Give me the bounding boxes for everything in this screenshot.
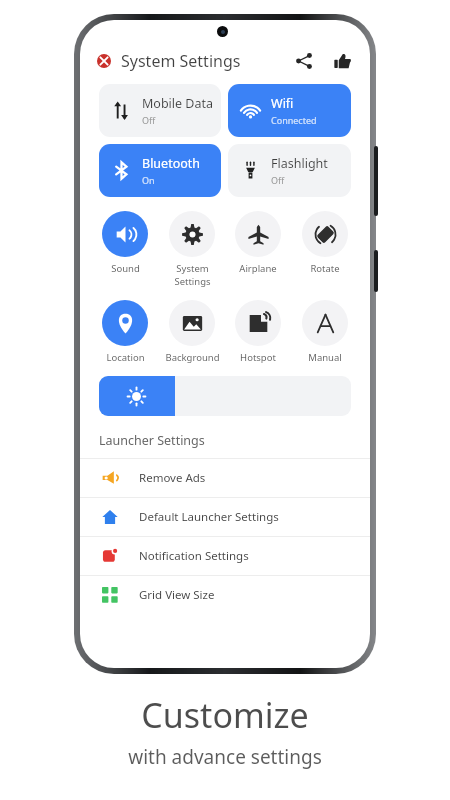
staticText: Customize (141, 692, 309, 738)
staticText: Flashlight (271, 155, 328, 172)
staticText: Notification Settings (139, 548, 249, 564)
button[interactable]: Mobile Data (99, 84, 221, 137)
staticText: Airplane (239, 262, 277, 275)
button[interactable]: Remove Ads (80, 459, 370, 497)
staticText: System Settings (174, 262, 211, 288)
staticText: Remove Ads (139, 470, 206, 486)
button[interactable]: Brightness (99, 376, 351, 416)
button[interactable]: Flashlight (228, 144, 351, 197)
button[interactable]: Share (290, 47, 318, 75)
staticText: Off (271, 174, 285, 186)
button[interactable]: Like (328, 47, 356, 75)
staticText: Location (106, 351, 145, 364)
staticText: Wifi (271, 95, 294, 112)
button[interactable]: Manual (296, 300, 354, 364)
button[interactable]: Default Launcher Settings (80, 498, 370, 536)
staticText: Mobile Data (142, 95, 214, 112)
button[interactable]: Wifi (228, 84, 351, 137)
staticText: Hotspot (240, 351, 276, 364)
button[interactable]: Rotate (296, 211, 354, 275)
staticText: Connected (271, 114, 317, 126)
button[interactable]: Location (96, 300, 154, 364)
button[interactable] (91, 48, 117, 74)
button[interactable]: Background (163, 300, 221, 364)
button[interactable]: Grid View Size (80, 576, 370, 614)
staticText: Launcher Settings (99, 432, 205, 449)
button[interactable]: Hotspot (229, 300, 287, 364)
staticText: Bluetooth (142, 155, 201, 172)
button[interactable]: Airplane (229, 211, 287, 275)
staticText: Background (165, 351, 220, 364)
staticText: On (142, 174, 155, 186)
staticText: Sound (111, 262, 140, 275)
staticText: Default Launcher Settings (139, 509, 279, 525)
button[interactable]: Sound (96, 211, 154, 275)
staticText: Grid View Size (139, 587, 215, 603)
button[interactable]: Notification Settings (80, 537, 370, 575)
staticText: with advance settings (128, 744, 322, 770)
button[interactable]: System Settings (163, 211, 221, 288)
staticText: Manual (308, 351, 342, 364)
staticText: Rotate (310, 262, 340, 275)
staticText: Off (142, 114, 156, 126)
button[interactable]: Bluetooth (99, 144, 221, 197)
staticText: System Settings (121, 50, 241, 72)
